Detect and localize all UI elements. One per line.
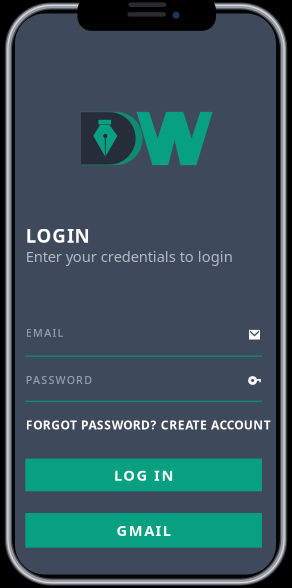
button[interactable]: LOG IN [25,459,262,491]
staticText: PASSWORD [26,373,94,387]
staticText: LOG IN [112,465,176,485]
staticText: LOGIN [26,223,92,248]
button[interactable]: GMAIL [25,513,262,548]
staticText: CREATE ACCOUNT [161,417,272,433]
staticText: EMAIL [26,325,66,340]
button[interactable]: CREATE ACCOUNT [161,417,272,433]
staticText: FORGOT PASSWORD? [26,417,158,433]
staticText: Enter your credentials to login [26,246,234,266]
staticText: GMAIL [114,521,173,540]
button[interactable]: FORGOT PASSWORD? [26,417,158,433]
